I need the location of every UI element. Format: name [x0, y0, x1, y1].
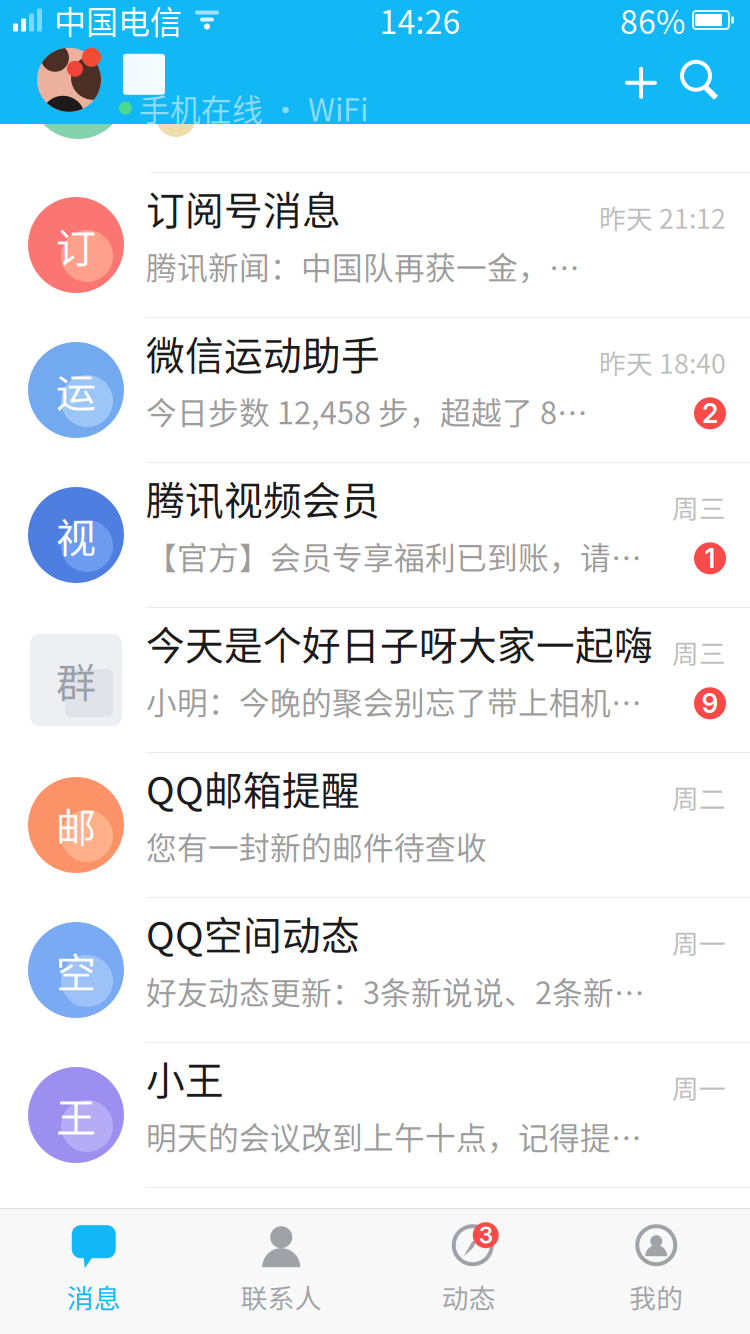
- button[interactable]: 在线好友: [0, 124, 750, 173]
- button[interactable]: 搜索: [672, 52, 734, 114]
- button[interactable]: 邮: [0, 753, 750, 898]
- staticText: 微信运动助手: [146, 325, 380, 381]
- staticText: 腾讯视频会员: [146, 470, 380, 526]
- staticText: 中国电信: [54, 0, 182, 43]
- staticText: 空: [56, 941, 96, 999]
- staticText: 小王: [146, 1050, 224, 1106]
- staticText: 好友动态更新：3条新说说、2条新评论待查看: [146, 969, 662, 1013]
- staticText: 周二: [672, 778, 726, 816]
- staticText: 订: [56, 216, 96, 274]
- button[interactable]: 群: [0, 608, 750, 753]
- staticText: 邮: [56, 796, 96, 854]
- staticText: 订阅号消息: [146, 180, 341, 236]
- staticText: 9: [701, 687, 718, 719]
- staticText: 今天是个好日子呀大家一起嗨: [146, 615, 653, 671]
- staticText: QQ邮箱提醒: [146, 760, 360, 816]
- staticText: 2: [702, 397, 718, 429]
- staticText: 腾讯新闻：中国队再获一金，金牌总数升至第一: [146, 244, 589, 288]
- button[interactable]: 王: [0, 1043, 750, 1188]
- staticText: 1: [704, 542, 715, 574]
- staticText: QQ空间动态: [146, 905, 360, 961]
- staticText: 周一: [672, 1068, 726, 1106]
- staticText: 群: [56, 651, 96, 709]
- staticText: 联系人: [241, 1277, 322, 1316]
- staticText: 动态: [442, 1277, 496, 1316]
- staticText: 周三: [672, 633, 726, 671]
- button[interactable]: 3: [375, 1209, 562, 1334]
- staticText: 小明：今晚的聚会别忘了带上相机哦，记得早点到: [146, 679, 662, 723]
- button[interactable]: 订: [0, 173, 750, 318]
- staticText: 我的: [629, 1277, 683, 1316]
- button[interactable]: 运: [0, 318, 750, 463]
- staticText: 手机在线 · WiFi: [139, 86, 368, 130]
- staticText: 昨天 21:12: [599, 198, 726, 236]
- staticText: 明天的会议改到上午十点，记得提前十分钟到会议室: [146, 1114, 662, 1158]
- button[interactable]: 消息: [0, 1209, 187, 1334]
- staticText: 周三: [672, 488, 726, 526]
- staticText: 周一: [672, 923, 726, 961]
- staticText: 14:26: [379, 0, 460, 43]
- button[interactable]: 视: [0, 463, 750, 608]
- button[interactable]: 个人头像: [26, 42, 101, 112]
- staticText: 昨天 18:40: [599, 343, 726, 381]
- staticText: 3: [479, 1221, 493, 1249]
- staticText: 运: [56, 361, 96, 419]
- button[interactable]: 我的: [562, 1209, 750, 1334]
- staticText: 王: [56, 1086, 96, 1144]
- staticText: 86%: [620, 0, 685, 43]
- staticText: 消息: [67, 1277, 121, 1316]
- staticText: 您有一封新的邮件待查收: [146, 824, 487, 868]
- staticText: 【官方】会员专享福利已到账，请查收: [146, 534, 662, 578]
- button[interactable]: 联系人: [187, 1209, 375, 1334]
- staticText: 今日步数 12,458 步，超越了 86% 的好友，继续加油: [146, 389, 589, 433]
- staticText: 视: [56, 506, 96, 564]
- button[interactable]: 添加: [610, 52, 672, 114]
- button[interactable]: 空: [0, 898, 750, 1043]
